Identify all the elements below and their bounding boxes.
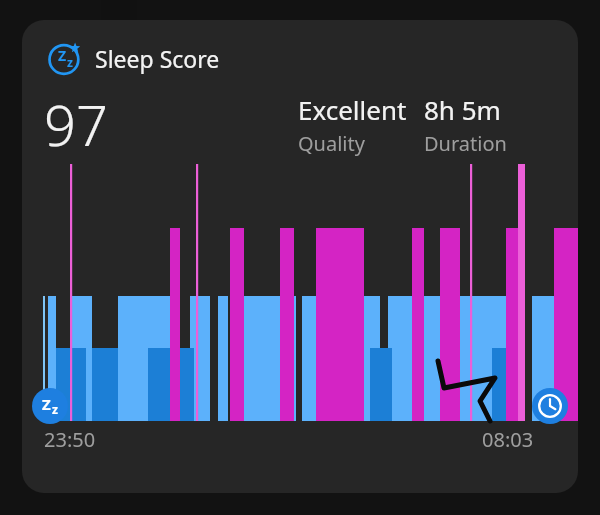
staticText: 08:03 — [482, 426, 534, 453]
button[interactable] — [40, 156, 560, 421]
staticText: z — [67, 54, 73, 70]
staticText: Duration — [424, 130, 507, 157]
button[interactable]: Wake time — [532, 388, 568, 424]
staticText: 97 — [44, 86, 108, 162]
staticText: Z — [58, 46, 67, 65]
button[interactable]: Z — [22, 20, 578, 493]
button[interactable]: Sleep start — [32, 388, 68, 424]
staticText: 23:50 — [44, 426, 96, 453]
staticText: Z — [42, 394, 51, 414]
staticText: 8h 5m — [424, 92, 501, 127]
staticText: z — [52, 401, 58, 417]
staticText: Quality — [298, 130, 365, 157]
button[interactable]: Z — [47, 40, 220, 76]
staticText: Sleep Score — [95, 43, 220, 74]
staticText: Excellent — [298, 92, 407, 127]
